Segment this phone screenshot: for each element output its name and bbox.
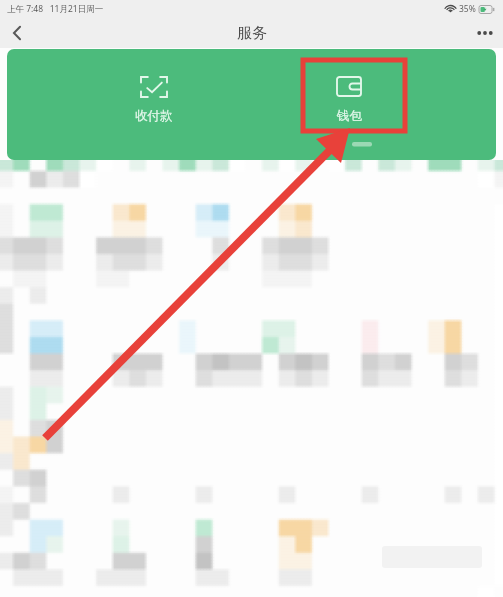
staticText: 钱包 [337, 108, 362, 124]
staticText: 收付款 [135, 108, 173, 124]
button[interactable]: 收付款 [57, 49, 251, 160]
staticText: 35% [459, 3, 476, 15]
button[interactable]: More options [467, 18, 503, 48]
staticText: 上午 7:48 11月21日周一 [7, 3, 104, 15]
button[interactable]: Back [0, 18, 34, 48]
staticText: 服务 [237, 24, 267, 43]
button[interactable]: 钱包 [251, 49, 446, 160]
